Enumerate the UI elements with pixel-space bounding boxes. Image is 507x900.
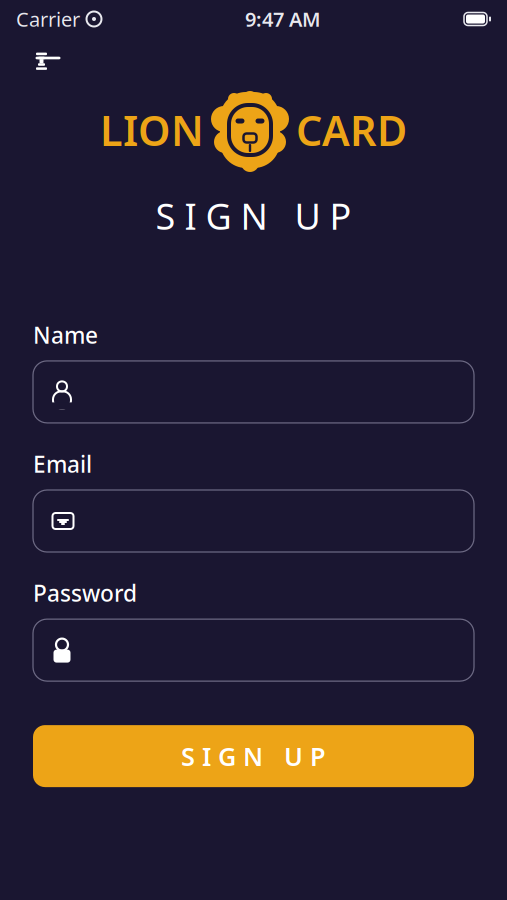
staticText: S I G N U P bbox=[155, 192, 351, 240]
button[interactable]: Back bbox=[26, 36, 70, 80]
button[interactable] bbox=[33, 361, 474, 423]
button[interactable] bbox=[33, 619, 474, 681]
staticText: S I G N U P bbox=[181, 739, 326, 773]
staticText: CARD bbox=[296, 103, 407, 157]
staticText: Name bbox=[33, 320, 98, 350]
button[interactable] bbox=[33, 490, 474, 552]
staticText: LION bbox=[100, 103, 204, 157]
button[interactable]: S I G N U P bbox=[33, 725, 474, 787]
staticText: Email bbox=[33, 449, 92, 479]
staticText: 9:47 AM bbox=[245, 6, 321, 32]
staticText: Carrier bbox=[16, 6, 80, 32]
staticText: Password bbox=[33, 578, 137, 608]
